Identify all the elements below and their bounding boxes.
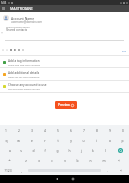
staticText: a <box>9 148 11 152</box>
button[interactable]: Search <box>111 145 129 155</box>
button[interactable]: q <box>0 135 12 145</box>
button[interactable]: Home <box>68 175 77 183</box>
button[interactable]: Formatting tool <box>13 48 17 52</box>
button[interactable]: n <box>84 155 97 165</box>
staticText: q <box>5 138 8 142</box>
button[interactable]: Add additional details <box>0 68 129 80</box>
button[interactable]: w <box>12 135 25 145</box>
button[interactable]: i <box>90 135 103 145</box>
button[interactable]: 0 <box>116 125 129 135</box>
staticText: d <box>32 148 35 152</box>
button[interactable]: u <box>77 135 90 145</box>
button[interactable]: d <box>27 145 39 155</box>
button[interactable]: 2 <box>12 125 25 135</box>
button[interactable]: c <box>45 155 58 165</box>
button[interactable]: Formatting tool <box>21 48 25 52</box>
button[interactable]: Backspace <box>110 155 129 165</box>
staticText: username@domain.com <box>11 20 42 24</box>
button[interactable]: o <box>103 135 116 145</box>
button[interactable]: z <box>19 155 32 165</box>
staticText: link <box>122 49 126 52</box>
staticText: . <box>107 168 108 172</box>
button[interactable]: b <box>71 155 84 165</box>
staticText: l <box>105 148 106 152</box>
button[interactable]: 3 <box>25 125 38 135</box>
button[interactable]: m <box>97 155 110 165</box>
button[interactable]: j <box>75 145 87 155</box>
staticText: Shared contacts <box>6 28 27 32</box>
button[interactable]: Choose any account to use <box>0 80 129 92</box>
staticText: 7 <box>83 128 85 132</box>
button[interactable]: l <box>99 145 111 155</box>
button[interactable]: Emoji <box>113 165 129 175</box>
button[interactable]: Preview <box>55 101 77 109</box>
staticText: 6 <box>70 128 72 132</box>
button[interactable]: Account Name <box>0 12 129 24</box>
button[interactable]: Expand dropdown <box>0 31 3 34</box>
button[interactable]: y <box>64 135 77 145</box>
staticText: e <box>31 138 33 142</box>
button[interactable]: link <box>122 49 126 52</box>
button[interactable]: Shift <box>0 155 19 165</box>
staticText: Select sharing option <box>6 25 30 28</box>
staticText: c <box>51 158 53 162</box>
staticText: 5:05 <box>1 1 7 5</box>
staticText: s <box>20 148 22 152</box>
button[interactable]: 6 <box>64 125 77 135</box>
staticText: y <box>70 138 72 142</box>
staticText: t <box>57 138 59 142</box>
button[interactable]: Formatting tool <box>9 48 13 52</box>
staticText: k <box>92 148 94 152</box>
button[interactable]: r <box>38 135 51 145</box>
button[interactable]: Back <box>52 175 61 183</box>
staticText: ?123 <box>4 168 12 172</box>
button[interactable]: 7 <box>77 125 90 135</box>
button[interactable]: Navigation menu <box>0 5 7 12</box>
button[interactable]: v <box>58 155 71 165</box>
staticText: 4 <box>44 128 46 132</box>
button[interactable]: h <box>63 145 75 155</box>
button[interactable]: p <box>116 135 129 145</box>
staticText: MASTROIANI <box>10 6 33 11</box>
staticText: x <box>38 158 40 162</box>
button[interactable]: e <box>25 135 38 145</box>
button[interactable]: 8 <box>90 125 103 135</box>
button[interactable]: x <box>32 155 45 165</box>
staticText: Items list for your reference <box>8 75 40 78</box>
button[interactable]: g <box>51 145 63 155</box>
staticText: o <box>109 138 111 142</box>
button[interactable]: Add a tag information <box>0 56 129 68</box>
button[interactable]: 1 <box>0 125 12 135</box>
staticText: Preview <box>58 103 70 107</box>
button[interactable]: a <box>4 145 15 155</box>
button[interactable]: 4 <box>38 125 51 135</box>
staticText: h <box>68 148 71 152</box>
staticText: j <box>81 148 82 152</box>
staticText: p <box>121 138 124 142</box>
staticText: Add a tag information <box>8 59 40 63</box>
staticText: 9 <box>109 128 111 132</box>
staticText: 5 <box>57 128 59 132</box>
staticText: u <box>82 138 85 142</box>
button[interactable]: ?123 <box>0 165 16 175</box>
button[interactable]: f <box>39 145 51 155</box>
staticText: b <box>76 158 79 162</box>
button[interactable]: Formatting tool <box>17 48 21 52</box>
button[interactable]: s <box>15 145 27 155</box>
staticText: g <box>56 148 59 152</box>
button[interactable]: k <box>87 145 99 155</box>
staticText: n <box>89 158 92 162</box>
button[interactable]: 9 <box>103 125 116 135</box>
button[interactable]: Formatting tool <box>5 48 9 52</box>
button[interactable]: t <box>51 135 64 145</box>
button[interactable]: 5 <box>51 125 64 135</box>
staticText: 2 <box>18 128 20 132</box>
button[interactable]: Formatting tool <box>1 48 5 52</box>
staticText: 3 <box>31 128 33 132</box>
button[interactable]: , <box>16 165 27 175</box>
staticText: f <box>44 148 46 152</box>
staticText: w <box>17 138 20 142</box>
